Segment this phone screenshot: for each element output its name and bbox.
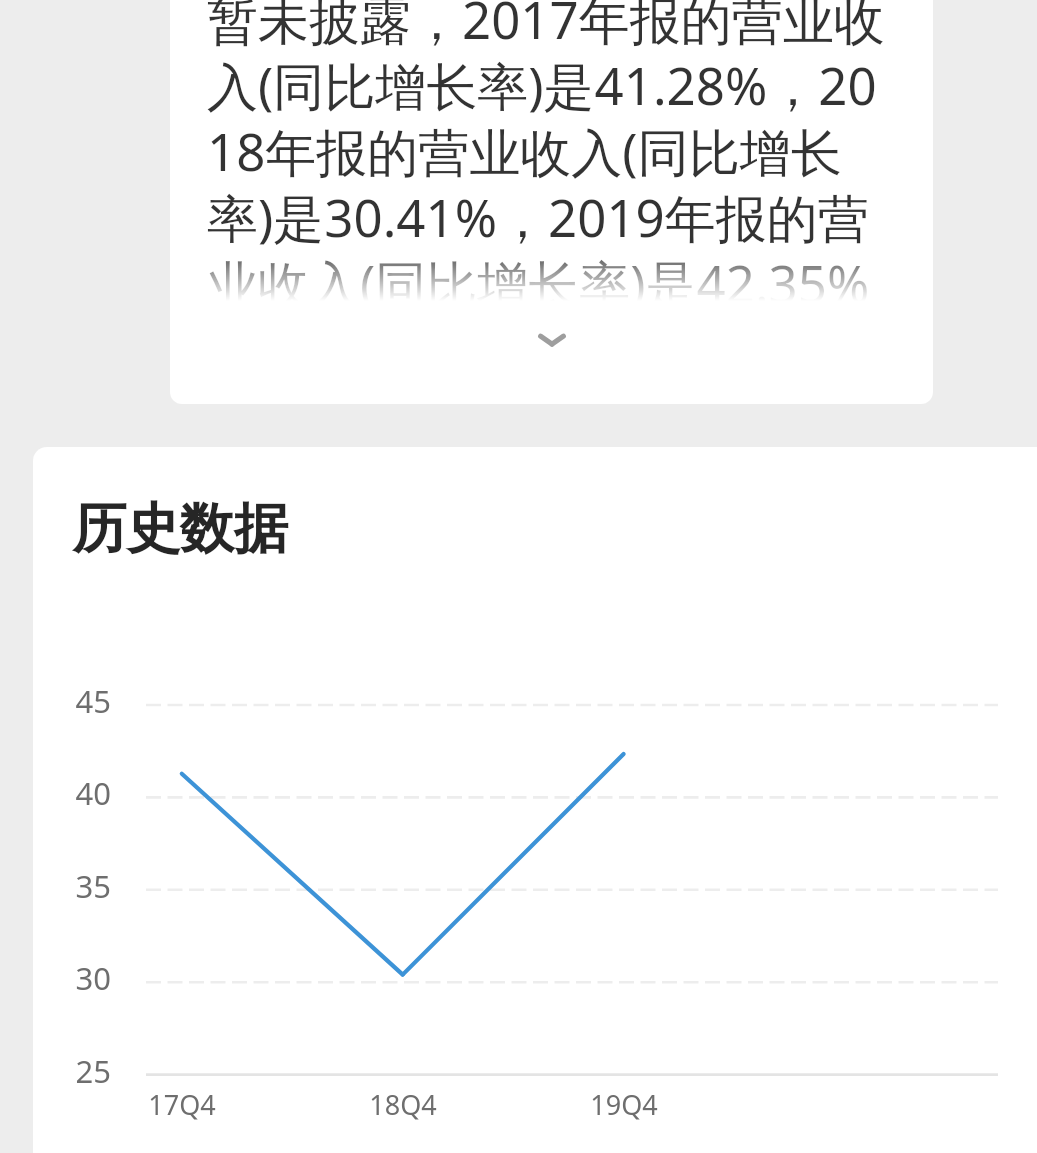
staticText: 历史数据 — [72, 495, 288, 563]
staticText: 19Q4 — [554, 1086, 694, 1123]
staticText: 17Q4 — [112, 1086, 252, 1123]
staticText: 18Q4 — [333, 1086, 473, 1123]
staticText: 30 — [52, 957, 111, 999]
staticText: 35 — [52, 865, 111, 907]
button[interactable]: Revenue growth commentary — [170, 0, 933, 404]
button[interactable]: Historical data chart — [33, 447, 1037, 1153]
staticText: 25 — [52, 1050, 111, 1092]
staticText: 暂未披露，2017年报的营业收 入(同比增长率)是41.28%，20 18年报的… — [207, 0, 885, 319]
button[interactable]: Expand full text — [492, 300, 612, 380]
staticText: 45 — [52, 680, 111, 722]
staticText: 40 — [52, 772, 111, 814]
